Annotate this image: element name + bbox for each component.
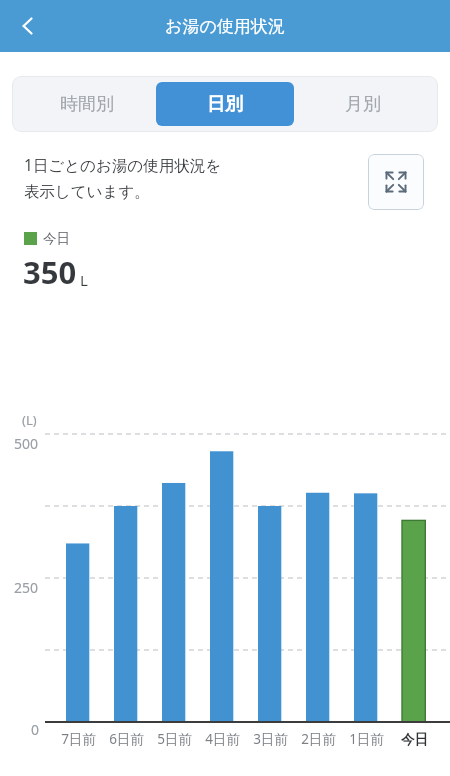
button[interactable]: 5日前: [150, 726, 198, 752]
button[interactable]: 時間別: [18, 82, 156, 126]
staticText: 月別: [345, 93, 381, 116]
button[interactable]: 6日前: [102, 726, 150, 752]
staticText: 1日ごとのお湯の使用状況を: [24, 154, 222, 175]
staticText: お湯の使用状況: [165, 16, 285, 37]
staticText: 時間別: [60, 93, 114, 116]
staticText: (L): [22, 411, 37, 429]
staticText: 6日前: [109, 730, 144, 748]
button[interactable]: 今日: [390, 726, 438, 752]
button[interactable]: Expand chart: [368, 154, 424, 210]
staticText: 1日前: [349, 730, 384, 748]
button[interactable]: 日別: [156, 82, 294, 126]
staticText: 表示しています。: [24, 182, 150, 202]
staticText: 2日前: [301, 730, 336, 748]
button[interactable]: 3日前: [246, 726, 294, 752]
staticText: 3日前: [253, 730, 288, 748]
staticText: 350: [23, 251, 77, 293]
staticText: L: [80, 270, 88, 290]
staticText: 0: [31, 720, 40, 739]
staticText: 500: [14, 434, 39, 453]
button[interactable]: 月別: [294, 82, 432, 126]
button[interactable]: 7日前: [54, 726, 102, 752]
staticText: 4日前: [205, 730, 240, 748]
staticText: 7日前: [61, 730, 96, 748]
button[interactable]: 2日前: [294, 726, 342, 752]
button[interactable]: 1日前: [342, 726, 390, 752]
button[interactable]: 4日前: [198, 726, 246, 752]
staticText: 今日: [401, 731, 428, 748]
staticText: 日別: [207, 93, 243, 116]
staticText: 今日: [43, 230, 70, 247]
staticText: 250: [14, 578, 39, 597]
staticText: 5日前: [157, 730, 192, 748]
button[interactable]: Back: [6, 4, 50, 48]
